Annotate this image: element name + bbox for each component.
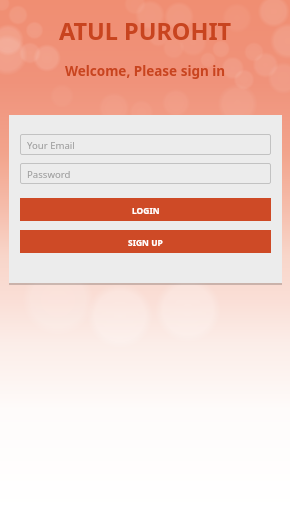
button[interactable]: SIGN UP	[20, 230, 271, 253]
staticText: SIGN UP	[128, 237, 163, 248]
staticText: Password	[27, 168, 71, 181]
button[interactable]: Your Email	[20, 134, 271, 155]
staticText: ATUL PUROHIT	[0, 15, 290, 47]
staticText: Your Email	[27, 139, 75, 152]
staticText: Welcome, Please sign in	[0, 62, 290, 80]
button[interactable]: LOGIN	[20, 198, 271, 221]
button[interactable]: Password	[20, 163, 271, 184]
staticText: LOGIN	[132, 205, 160, 216]
